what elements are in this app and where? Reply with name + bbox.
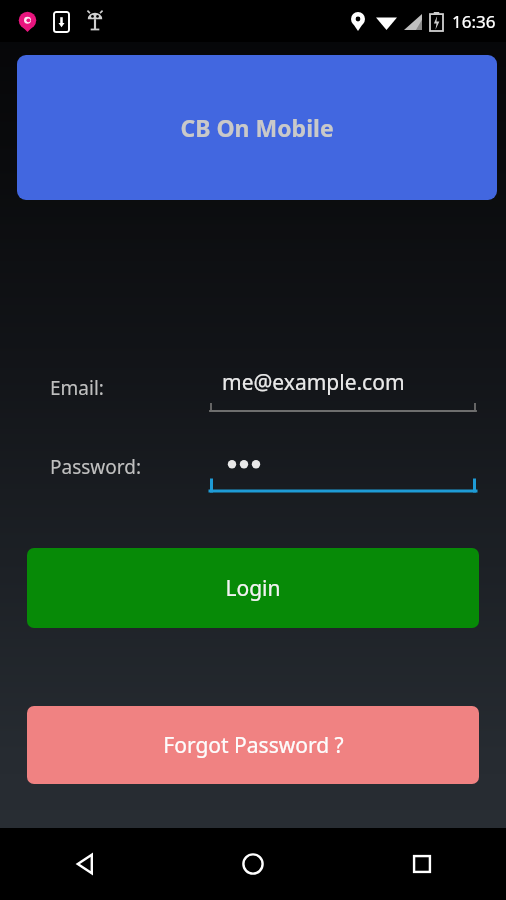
button[interactable] <box>210 445 476 493</box>
staticText: CB On Mobile <box>180 112 334 143</box>
staticText: Email: <box>50 375 104 401</box>
staticText: Login <box>225 574 281 603</box>
staticText: me@example.com <box>222 368 405 397</box>
button[interactable]: Login <box>27 548 479 628</box>
button[interactable]: Home <box>168 828 337 900</box>
button[interactable]: Recent apps <box>337 828 506 900</box>
button[interactable]: Forgot Password ? <box>27 706 479 784</box>
staticText: Password: <box>50 454 142 480</box>
button[interactable]: CB On Mobile <box>17 55 497 200</box>
staticText: 16:36 <box>452 10 496 33</box>
button[interactable]: me@example.com <box>210 365 476 413</box>
button[interactable]: Back <box>0 828 168 900</box>
staticText: Forgot Password ? <box>163 731 344 760</box>
